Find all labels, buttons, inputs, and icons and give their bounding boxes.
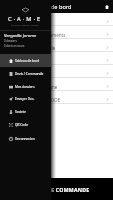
staticText: Vergnolle Jerome <box>4 33 37 38</box>
button[interactable]: Liste de mes documents <box>0 26 113 39</box>
staticText: Mon catalogue <box>14 71 46 77</box>
staticText: Tableau de bord <box>29 3 72 11</box>
staticText: NOUVELLE COMMANDE <box>25 186 90 193</box>
staticText: 0 dossiers <box>4 39 17 43</box>
staticText: Envoyer Doc. <box>15 97 35 101</box>
button[interactable]: Tableau de bord <box>0 54 51 67</box>
button[interactable]: Deconnexion <box>0 132 51 145</box>
button[interactable]: Societe <box>0 105 51 118</box>
button[interactable]: QR Code <box>0 118 51 131</box>
staticText: Mes medias en ligne <box>14 84 58 90</box>
staticText: Mes dossiers <box>14 58 42 64</box>
staticText: Suivi de commande <box>14 45 56 51</box>
staticText: Liste de mes documents <box>14 32 66 38</box>
button[interactable]: Mon espace QR CODE <box>0 91 113 104</box>
button[interactable]: Suivi de commande <box>0 39 113 52</box>
button[interactable]: Mes devis <box>0 13 113 26</box>
button[interactable]: Devis / Commande <box>0 67 51 80</box>
staticText: Deconnexion <box>15 137 35 141</box>
staticText: Mes dossiers <box>15 85 35 89</box>
staticText: QR Code <box>15 123 29 127</box>
button[interactable]: Mes dossiers <box>0 80 51 93</box>
staticText: 0 devis en cours <box>4 44 25 48</box>
staticText: Tableau de bord <box>15 59 40 63</box>
button[interactable]: Mes medias en ligne <box>0 78 113 91</box>
staticText: C·A·M·E <box>8 15 43 23</box>
button[interactable]: Mon catalogue <box>0 65 113 78</box>
staticText: Societe <box>15 110 26 114</box>
staticText: Mes devis <box>14 19 35 25</box>
button[interactable]: Accueil <box>100 0 113 13</box>
staticText: Mon espace QR CODE <box>14 97 61 103</box>
button[interactable]: NOUVELLE COMMANDE <box>0 178 113 200</box>
staticText: Devis / Commande <box>15 72 44 76</box>
button[interactable]: Mes dossiers <box>0 52 113 65</box>
button[interactable]: Envoyer Doc. <box>0 92 51 105</box>
staticText: automatic opening solutions <box>11 24 40 27</box>
